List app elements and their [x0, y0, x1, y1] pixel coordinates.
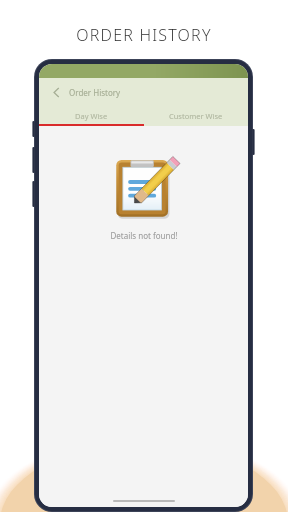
button[interactable]: Day Wise [39, 106, 143, 126]
staticText: Day Wise [75, 111, 108, 121]
staticText: Details not found! [110, 230, 178, 241]
staticText: ORDER HISTORY [76, 24, 212, 46]
button[interactable]: Customer Wise [143, 106, 248, 126]
staticText: Customer Wise [169, 111, 223, 121]
staticText: Order History [69, 87, 121, 98]
button[interactable]: Back [47, 83, 65, 101]
